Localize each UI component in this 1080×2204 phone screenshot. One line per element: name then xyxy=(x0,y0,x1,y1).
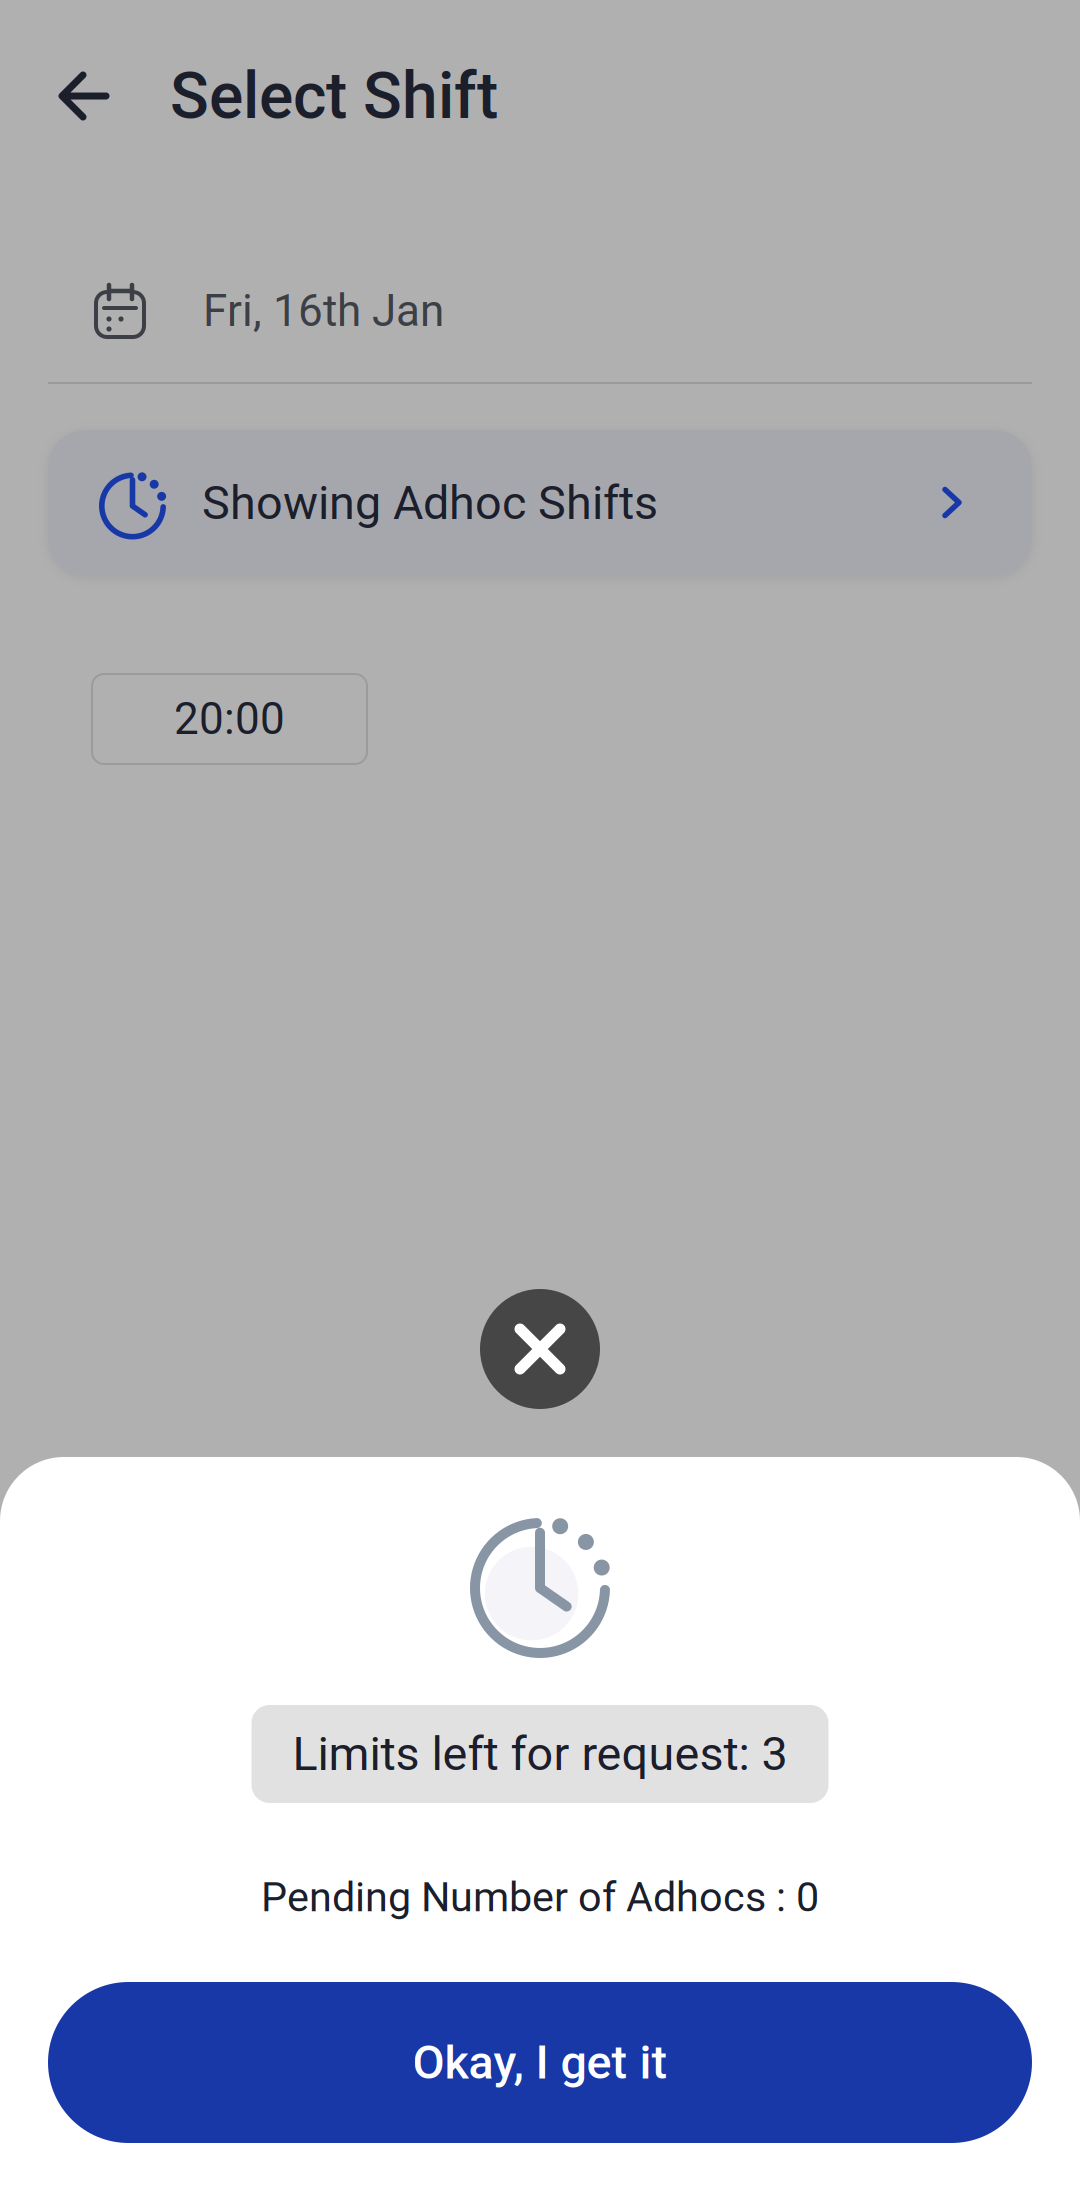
button[interactable]: Close xyxy=(480,1289,600,1409)
staticText: Fri, 16th Jan xyxy=(203,285,444,337)
staticText: Limits left for request: 3 xyxy=(292,1727,787,1781)
button[interactable]: Back xyxy=(0,46,139,146)
button[interactable]: Fri, 16th Jan xyxy=(0,276,1080,346)
button[interactable]: 20:00 xyxy=(0,674,367,764)
staticText: Select Shift xyxy=(170,58,498,133)
staticText: Okay, I get it xyxy=(412,2035,667,2090)
staticText: Showing Adhoc Shifts xyxy=(202,476,658,530)
button[interactable]: Showing Adhoc Shifts xyxy=(0,430,1080,576)
button[interactable]: Okay, I get it xyxy=(0,1982,1080,2143)
staticText: Pending Number of Adhocs : 0 xyxy=(261,1873,819,1921)
staticText: 20:00 xyxy=(174,693,285,745)
